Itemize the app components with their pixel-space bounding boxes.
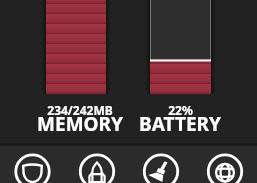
staticText: BATTERY	[139, 111, 221, 137]
button[interactable]: Clean	[129, 146, 193, 183]
button[interactable]: Security	[0, 146, 65, 183]
staticText: 234/242MB	[47, 102, 113, 118]
button[interactable]: Browser	[193, 146, 257, 183]
staticText: 22%	[168, 102, 193, 118]
button[interactable]: Boost	[65, 146, 129, 183]
staticText: MEMORY	[37, 111, 123, 137]
